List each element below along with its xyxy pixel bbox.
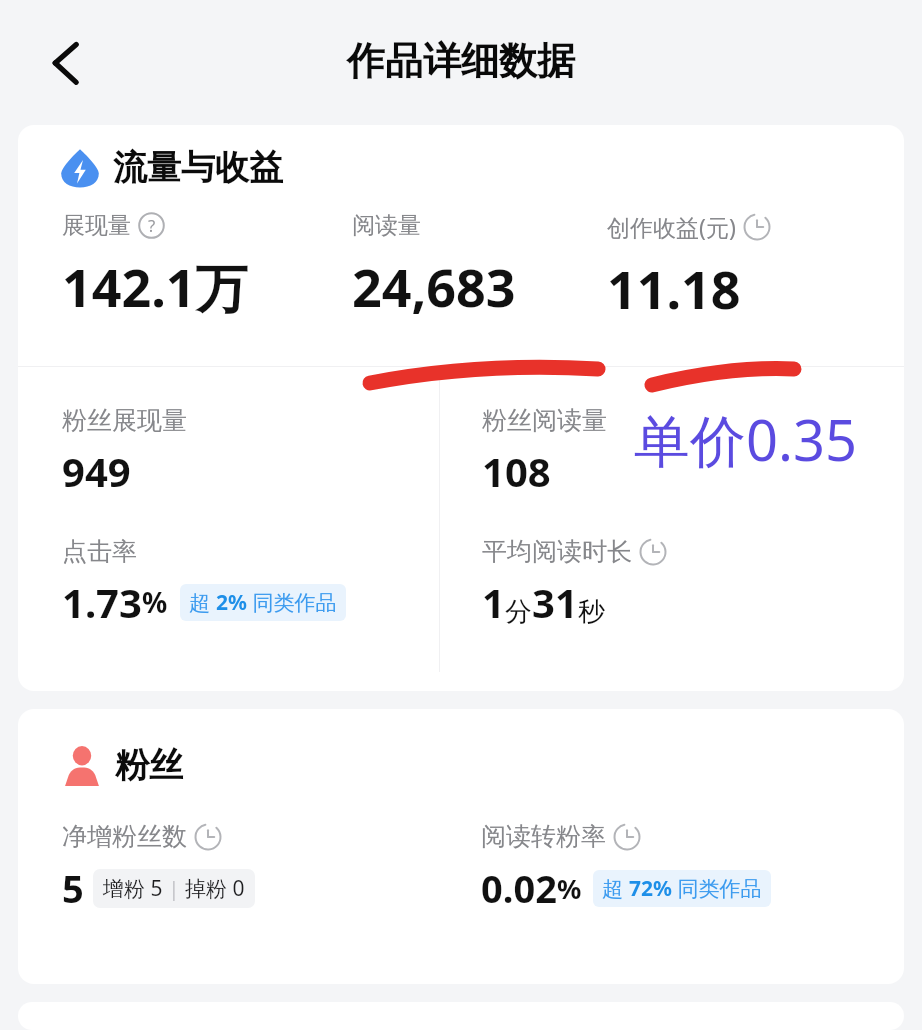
button[interactable]: 流量与收益 bbox=[18, 125, 904, 691]
staticText: 949 bbox=[62, 444, 131, 498]
button[interactable]: 超 bbox=[593, 870, 771, 907]
staticText: | bbox=[163, 875, 185, 902]
staticText: 展现量 bbox=[62, 211, 131, 240]
staticText: 72% bbox=[629, 874, 672, 903]
staticText: 粉丝展现量 bbox=[62, 405, 187, 436]
button[interactable]: Updated periodically bbox=[613, 823, 641, 851]
button[interactable]: 增粉 5 bbox=[93, 869, 255, 908]
staticText: 阅读转粉率 bbox=[481, 821, 606, 852]
staticText: 作品详细数据 bbox=[347, 37, 575, 85]
staticText: % bbox=[142, 583, 168, 621]
button[interactable]: Updated periodically bbox=[194, 823, 222, 851]
staticText: 创作收益(元) bbox=[607, 211, 736, 242]
button[interactable]: 超 bbox=[180, 584, 346, 621]
staticText: 超 bbox=[189, 588, 216, 617]
staticText: 同类作品 bbox=[672, 874, 762, 903]
staticText: 11.18 bbox=[607, 253, 741, 324]
staticText: 108 bbox=[482, 444, 551, 498]
staticText: 超 bbox=[602, 874, 629, 903]
staticText: 增粉 5 bbox=[103, 874, 163, 903]
staticText: 31 bbox=[532, 575, 578, 629]
staticText: 0.02 bbox=[481, 862, 557, 914]
staticText: 1 bbox=[482, 575, 505, 629]
button[interactable]: 粉丝 bbox=[18, 709, 904, 984]
staticText: 平均阅读时长 bbox=[482, 536, 632, 567]
staticText: 5 bbox=[62, 862, 84, 914]
staticText: 同类作品 bbox=[247, 588, 337, 617]
button[interactable]: Back bbox=[34, 30, 100, 96]
staticText: % bbox=[557, 870, 582, 907]
staticText: 粉丝阅读量 bbox=[482, 405, 607, 436]
staticText: 点击率 bbox=[62, 536, 137, 567]
button[interactable]: Updated periodically bbox=[743, 213, 771, 241]
button[interactable]: Updated periodically bbox=[639, 538, 667, 566]
staticText: 秒 bbox=[578, 595, 605, 629]
staticText: 粉丝 bbox=[115, 744, 183, 787]
staticText: 2% bbox=[216, 588, 247, 617]
staticText: 掉粉 0 bbox=[185, 874, 245, 903]
staticText: 1.73 bbox=[62, 575, 142, 629]
staticText: 净增粉丝数 bbox=[62, 821, 187, 852]
staticText: 142.1万 bbox=[62, 251, 248, 322]
staticText: 单价0.35 bbox=[634, 401, 858, 477]
staticText: 阅读量 bbox=[352, 211, 421, 240]
staticText: 分 bbox=[505, 595, 532, 629]
staticText: ? bbox=[148, 214, 156, 237]
staticText: 流量与收益 bbox=[113, 146, 283, 189]
staticText: 24,683 bbox=[352, 251, 516, 322]
button[interactable]: Help bbox=[138, 212, 165, 239]
